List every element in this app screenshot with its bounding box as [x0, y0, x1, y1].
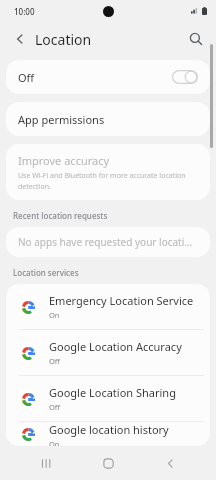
staticText: On	[49, 310, 60, 320]
staticText: Recent location requests	[13, 210, 108, 221]
staticText: Location	[35, 30, 92, 49]
button[interactable]: Emergency Location Service	[6, 284, 210, 329]
staticText: On	[49, 439, 60, 446]
staticText: Use Wi-Fi and Bluetooth for more accurat…	[18, 171, 198, 191]
button[interactable]: Location toggle	[172, 70, 198, 84]
button[interactable]: Improve accuracy	[6, 144, 210, 200]
staticText: Emergency Location Service	[49, 293, 194, 308]
staticText: 10:00	[14, 6, 35, 17]
staticText: App permissions	[18, 112, 105, 127]
button[interactable]: Google Location Sharing	[6, 376, 210, 421]
button[interactable]: Google location history	[6, 422, 210, 446]
staticText: Off	[18, 70, 172, 85]
button[interactable]: App permissions	[6, 102, 210, 136]
staticText: Location services	[13, 267, 79, 278]
staticText: Google Location Accuracy	[49, 339, 182, 354]
button[interactable]: Search	[182, 25, 210, 53]
staticText: Off	[49, 356, 61, 366]
button[interactable]: Off	[6, 60, 210, 94]
staticText: Google Location Sharing	[49, 385, 176, 400]
button[interactable]: Recent apps	[30, 447, 62, 479]
staticText: Improve accuracy	[18, 153, 110, 168]
staticText: Google location history	[49, 422, 169, 437]
staticText: No apps have requested your location..	[18, 235, 198, 249]
button[interactable]: Back	[154, 447, 186, 479]
staticText: Off	[49, 402, 61, 412]
button[interactable]: Home	[92, 447, 124, 479]
button[interactable]: Back	[6, 25, 34, 53]
button[interactable]: Google Location Accuracy	[6, 330, 210, 375]
